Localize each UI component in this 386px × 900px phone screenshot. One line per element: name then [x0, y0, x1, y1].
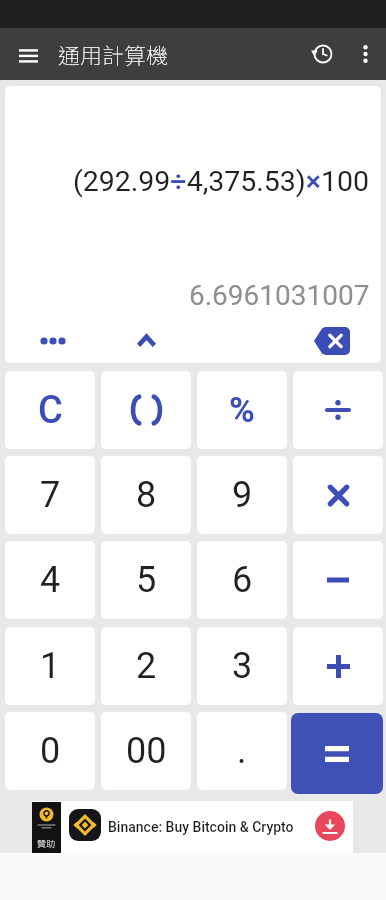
staticText: 5	[136, 559, 157, 601]
button[interactable]: 6	[197, 541, 287, 619]
button[interactable]: 5	[101, 541, 191, 619]
staticText: 1	[40, 645, 61, 687]
staticText: 贊助	[37, 837, 56, 850]
staticText: .	[237, 730, 247, 772]
button[interactable]	[123, 326, 169, 356]
staticText: C	[38, 388, 63, 433]
button[interactable]	[101, 371, 191, 449]
staticText: (292.99÷4,375.53)×100	[73, 165, 370, 198]
button[interactable]	[293, 456, 383, 534]
staticText: 3	[232, 645, 253, 687]
button[interactable]: 3	[197, 627, 287, 705]
staticText: 6	[232, 559, 253, 601]
staticText: 00	[126, 730, 167, 772]
button[interactable]	[28, 326, 78, 356]
staticText: 0	[40, 730, 61, 772]
staticText: %	[229, 390, 255, 431]
button[interactable]: 7	[5, 456, 95, 534]
staticText: 9	[232, 474, 253, 516]
button[interactable]	[293, 371, 383, 449]
button[interactable]: 0	[5, 712, 95, 790]
button[interactable]: 8	[101, 456, 191, 534]
button[interactable]: 2	[101, 627, 191, 705]
button[interactable]: 贊助	[32, 801, 353, 853]
button[interactable]: 4	[5, 541, 95, 619]
staticText: Binance: Buy Bitcoin & Crypto	[108, 819, 294, 835]
staticText: 2	[136, 645, 157, 687]
button[interactable]	[304, 322, 360, 360]
staticText: 8	[136, 474, 157, 516]
button[interactable]	[293, 627, 383, 705]
button[interactable]: %	[197, 371, 287, 449]
button[interactable]	[293, 541, 383, 619]
staticText: 通用計算機	[58, 38, 169, 70]
button[interactable]	[315, 811, 345, 841]
button[interactable]: 9	[197, 456, 287, 534]
button[interactable]	[291, 713, 383, 794]
button[interactable]: .	[197, 712, 287, 790]
button[interactable]: 1	[5, 627, 95, 705]
button[interactable]: 00	[101, 712, 191, 790]
button[interactable]	[302, 34, 342, 74]
staticText: 7	[40, 474, 61, 516]
staticText: 6.6961031007	[189, 279, 370, 312]
button[interactable]	[346, 34, 384, 74]
button[interactable]	[8, 34, 48, 74]
button[interactable]: C	[5, 371, 95, 449]
staticText: 4	[40, 559, 61, 601]
